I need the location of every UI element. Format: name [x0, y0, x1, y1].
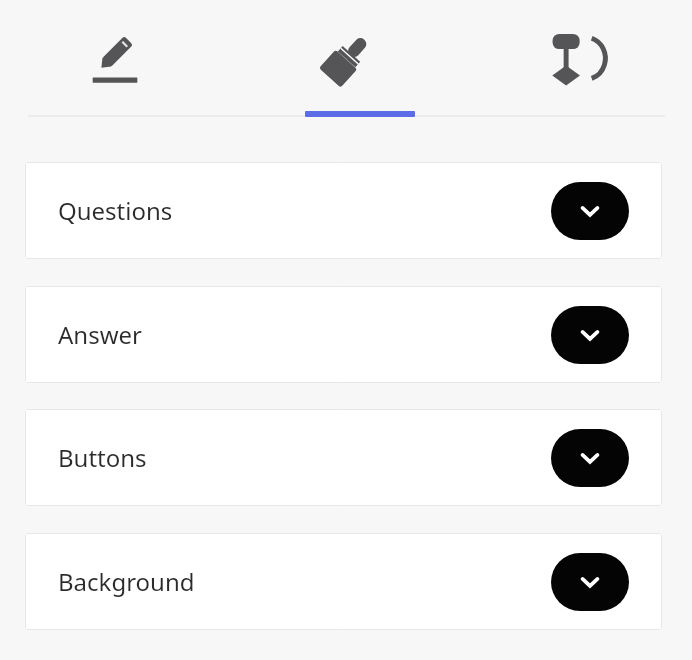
button[interactable]: Expand Questions [551, 182, 629, 240]
staticText: Answer [58, 318, 142, 351]
button[interactable]: Expand Answer [551, 306, 629, 364]
button[interactable]: Buttons [25, 409, 662, 506]
button[interactable]: Brush [230, 0, 461, 117]
staticText: Buttons [58, 441, 147, 474]
button[interactable]: Draw [0, 0, 230, 117]
button[interactable]: Questions [25, 162, 662, 259]
button[interactable]: Background [25, 533, 662, 630]
button[interactable]: Animation [461, 0, 692, 117]
button[interactable]: Expand Background [551, 553, 629, 611]
button[interactable]: Answer [25, 286, 662, 383]
staticText: Questions [58, 194, 173, 227]
staticText: Background [58, 565, 195, 598]
button[interactable]: Expand Buttons [551, 429, 629, 487]
